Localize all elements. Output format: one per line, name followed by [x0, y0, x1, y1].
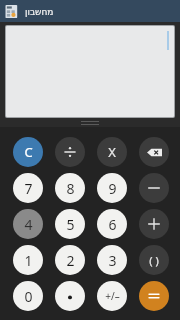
staticText: C [24, 143, 33, 161]
button[interactable]: 6 [97, 209, 127, 239]
button[interactable]: 4 [13, 209, 43, 239]
button[interactable] [55, 281, 85, 311]
staticText: 4 [24, 215, 33, 234]
staticText: 7 [24, 179, 33, 198]
staticText: ( ) [149, 253, 159, 268]
button[interactable]: +/– [97, 281, 127, 311]
staticText: 1 [24, 251, 33, 270]
button[interactable]: 0 [13, 281, 43, 311]
button[interactable]: Equals [139, 281, 169, 311]
staticText: +/– [105, 289, 120, 303]
button[interactable]: 1 [13, 245, 43, 275]
button[interactable]: ( ) [139, 245, 169, 275]
button[interactable] [6, 26, 174, 117]
button[interactable]: 8 [55, 173, 85, 203]
staticText: 5 [66, 215, 75, 234]
button[interactable]: X [97, 137, 127, 167]
staticText: מחשבון [25, 7, 54, 17]
button[interactable]: 3 [97, 245, 127, 275]
button[interactable]: Plus [139, 209, 169, 239]
button[interactable]: 9 [97, 173, 127, 203]
button[interactable]: 5 [55, 209, 85, 239]
button[interactable]: 2 [55, 245, 85, 275]
staticText: X [108, 143, 116, 161]
staticText: 3 [108, 251, 117, 270]
button[interactable] [55, 137, 85, 167]
staticText: 0 [24, 287, 33, 306]
button[interactable]: Backspace [139, 137, 169, 167]
staticText: 6 [108, 215, 117, 234]
staticText: 9 [108, 179, 117, 198]
button[interactable]: 7 [13, 173, 43, 203]
staticText: 2 [66, 251, 75, 270]
button[interactable]: Minus [139, 173, 169, 203]
button[interactable]: C [13, 137, 43, 167]
staticText: 8 [66, 179, 75, 198]
